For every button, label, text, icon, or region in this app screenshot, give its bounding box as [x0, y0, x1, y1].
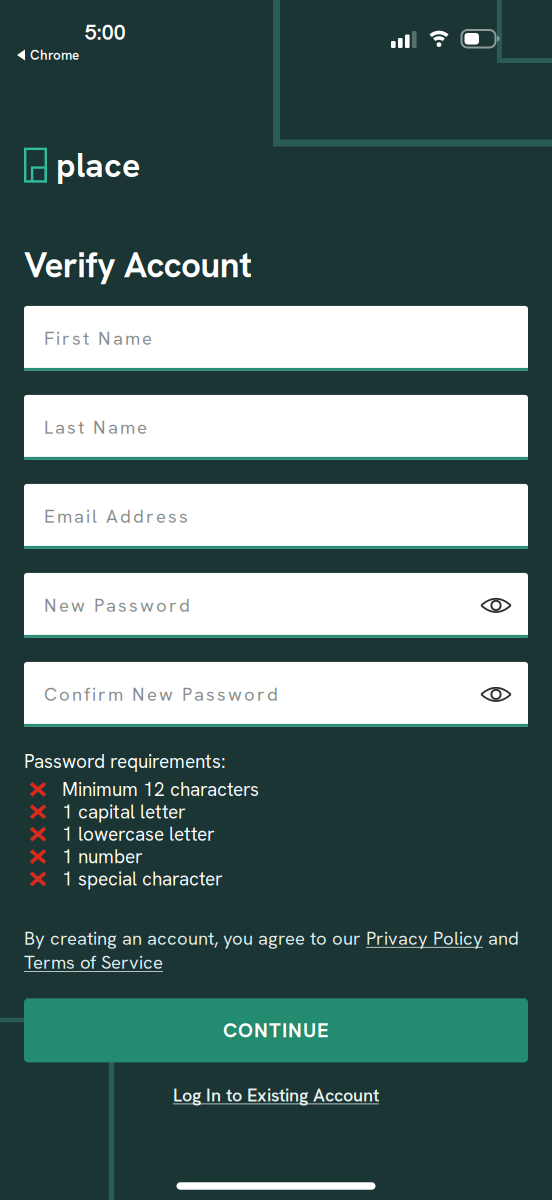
staticText: N e w P a s s w o r d: [44, 593, 190, 617]
staticText: L a s t N a m e: [44, 415, 147, 439]
staticText: By creating an account, you agree to our: [24, 926, 366, 950]
staticText: C o n f i r m N e w P a s s w o r d: [44, 682, 278, 706]
staticText: 1 number: [62, 844, 143, 869]
staticText: 1 special character: [62, 867, 223, 891]
button[interactable]: Log In to Existing Account: [173, 1083, 379, 1107]
staticText: C O N T I N U E: [223, 1017, 329, 1043]
staticText: F i r s t N a m e: [44, 326, 152, 350]
staticText: Privacy Policy: [366, 926, 483, 950]
staticText: 1 lowercase letter: [62, 822, 215, 847]
button[interactable]: Show password: [480, 595, 512, 615]
button[interactable]: N e w P a s s w o r d: [24, 573, 528, 638]
staticText: E m a i l A d d r e s s: [44, 504, 188, 528]
staticText: Log In to Existing Account: [173, 1083, 379, 1107]
button[interactable]: C O N T I N U E: [24, 998, 528, 1062]
staticText: and: [483, 926, 519, 950]
staticText: Terms of Service: [24, 950, 163, 974]
staticText: Minimum 12 characters: [62, 777, 259, 802]
staticText: Password requirements:: [24, 749, 226, 774]
staticText: Chrome: [30, 46, 79, 64]
staticText: 5:00: [84, 18, 125, 46]
button[interactable]: L a s t N a m e: [24, 395, 528, 460]
staticText: place: [56, 143, 140, 187]
staticText: 1 capital letter: [62, 799, 186, 824]
button[interactable]: Back to Chrome: [17, 46, 79, 64]
button[interactable]: E m a i l A d d r e s s: [24, 484, 528, 549]
button[interactable]: Show password: [480, 684, 512, 704]
button[interactable]: Privacy Policy: [366, 926, 483, 950]
staticText: Verify Account: [24, 242, 252, 288]
button[interactable]: C o n f i r m N e w P a s s w o r d: [24, 662, 528, 727]
button[interactable]: Terms of Service: [24, 950, 163, 974]
button[interactable]: F i r s t N a m e: [24, 306, 528, 371]
